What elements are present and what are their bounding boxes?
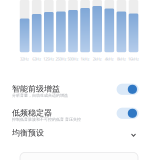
staticText: 智能前级增益 [12,84,60,94]
staticText: 8kHz [117,56,126,62]
staticText: 125Hz [43,56,54,62]
staticText: 500Hz [67,56,78,62]
staticText: 250Hz [55,56,66,62]
staticText: 4kHz [105,56,114,62]
button[interactable]: 低频稳定器 [0,108,160,128]
staticText: 63Hz [32,56,41,62]
staticText: 2kHz [93,56,102,62]
staticText: 32Hz [20,56,29,62]
staticText: 低频稳定器 [12,108,52,118]
staticText: 分析音量，自动生成合适的增益 [12,93,68,98]
staticText: 16kHz [128,56,139,62]
staticText: 均衡预设 [12,128,44,138]
button[interactable]: 智能前级增益 [0,84,160,104]
staticText: 抑制低音驻波和不可控的低音 音压失控 [12,117,81,122]
staticText: 1kHz [81,56,90,62]
button[interactable]: 均衡预设 [0,128,160,142]
